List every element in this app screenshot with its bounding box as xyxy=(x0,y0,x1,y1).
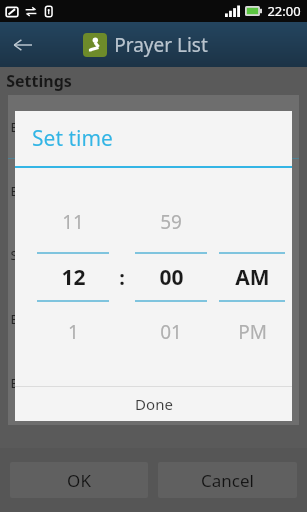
staticText: Cancel xyxy=(201,469,254,492)
staticText: Prayer List xyxy=(114,32,208,58)
staticText: 01 xyxy=(160,319,182,345)
staticText: Settings xyxy=(6,70,72,92)
button[interactable]: 1 xyxy=(37,302,109,362)
staticText: E xyxy=(10,182,18,200)
staticText: Done xyxy=(135,394,173,414)
staticText: Set time xyxy=(32,124,113,153)
staticText: E xyxy=(10,374,18,392)
staticText: 1 xyxy=(68,319,79,345)
button[interactable]: 59 xyxy=(135,192,207,252)
button[interactable]: 11 xyxy=(37,192,109,252)
button[interactable]: AM xyxy=(219,254,285,300)
staticText: OK xyxy=(67,469,91,492)
button[interactable]: Done xyxy=(15,387,292,421)
button[interactable]: 12 xyxy=(37,254,109,300)
staticText: 59 xyxy=(160,209,182,235)
staticText: PM xyxy=(238,319,267,345)
staticText: 12 xyxy=(61,263,86,292)
button[interactable]: PM xyxy=(219,302,285,362)
staticText: S xyxy=(10,246,18,264)
button[interactable]: Cancel xyxy=(158,462,297,498)
staticText: AM xyxy=(235,263,270,292)
staticText: E xyxy=(10,310,18,328)
staticText: 11 xyxy=(62,209,84,235)
staticText: : xyxy=(119,264,125,291)
staticText: 22:00 xyxy=(267,2,301,20)
staticText: 00 xyxy=(159,263,184,292)
button[interactable]: Back xyxy=(6,28,40,62)
button[interactable]: 01 xyxy=(135,302,207,362)
staticText: E xyxy=(10,118,18,136)
button[interactable]: 00 xyxy=(135,254,207,300)
button[interactable]: OK xyxy=(10,462,148,498)
